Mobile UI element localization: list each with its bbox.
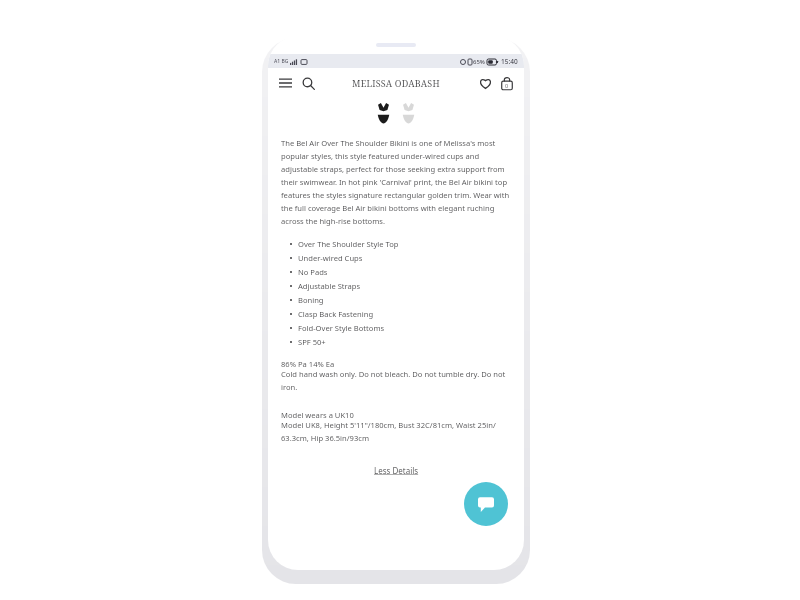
button[interactable]: Black bikini thumbnail <box>374 99 393 127</box>
button[interactable]: Shopping bag, 0 items <box>497 73 517 93</box>
staticText: Under-wired Cups <box>298 253 363 263</box>
button[interactable]: MELISSA ODABASH <box>352 77 440 89</box>
staticText: Model UK8, Height 5'11"/180cm, Bust 32C/… <box>281 420 511 443</box>
button[interactable]: Less Details <box>370 463 423 478</box>
button[interactable]: Search <box>298 73 318 93</box>
button[interactable]: Wishlist <box>475 73 495 93</box>
button[interactable]: Menu <box>275 73 295 93</box>
staticText: 65% <box>473 58 485 66</box>
staticText: Clasp Back Fastening <box>298 309 374 319</box>
staticText: Boning <box>298 295 324 305</box>
staticText: No Pads <box>298 267 328 277</box>
button[interactable]: White bikini thumbnail <box>399 99 418 127</box>
staticText: Less Details <box>374 465 419 476</box>
staticText: SPF 50+ <box>298 337 326 347</box>
staticText: Adjustable Straps <box>298 281 361 291</box>
staticText: Model wears a UK10 <box>281 410 354 420</box>
staticText: 15:40 <box>501 57 518 66</box>
staticText: The Bel Air Over The Shoulder Bikini is … <box>281 138 511 226</box>
staticText: MELISSA ODABASH <box>352 77 440 89</box>
button[interactable]: Chat with us <box>464 482 508 526</box>
staticText: 0 <box>505 82 509 89</box>
staticText: Over The Shoulder Style Top <box>298 239 399 249</box>
staticText: Fold-Over Style Bottoms <box>298 323 385 333</box>
staticText: Cold hand wash only. Do not bleach. Do n… <box>281 369 511 392</box>
staticText: 86% Pa 14% Ea <box>281 359 335 369</box>
staticText: A1 BG <box>274 58 289 65</box>
